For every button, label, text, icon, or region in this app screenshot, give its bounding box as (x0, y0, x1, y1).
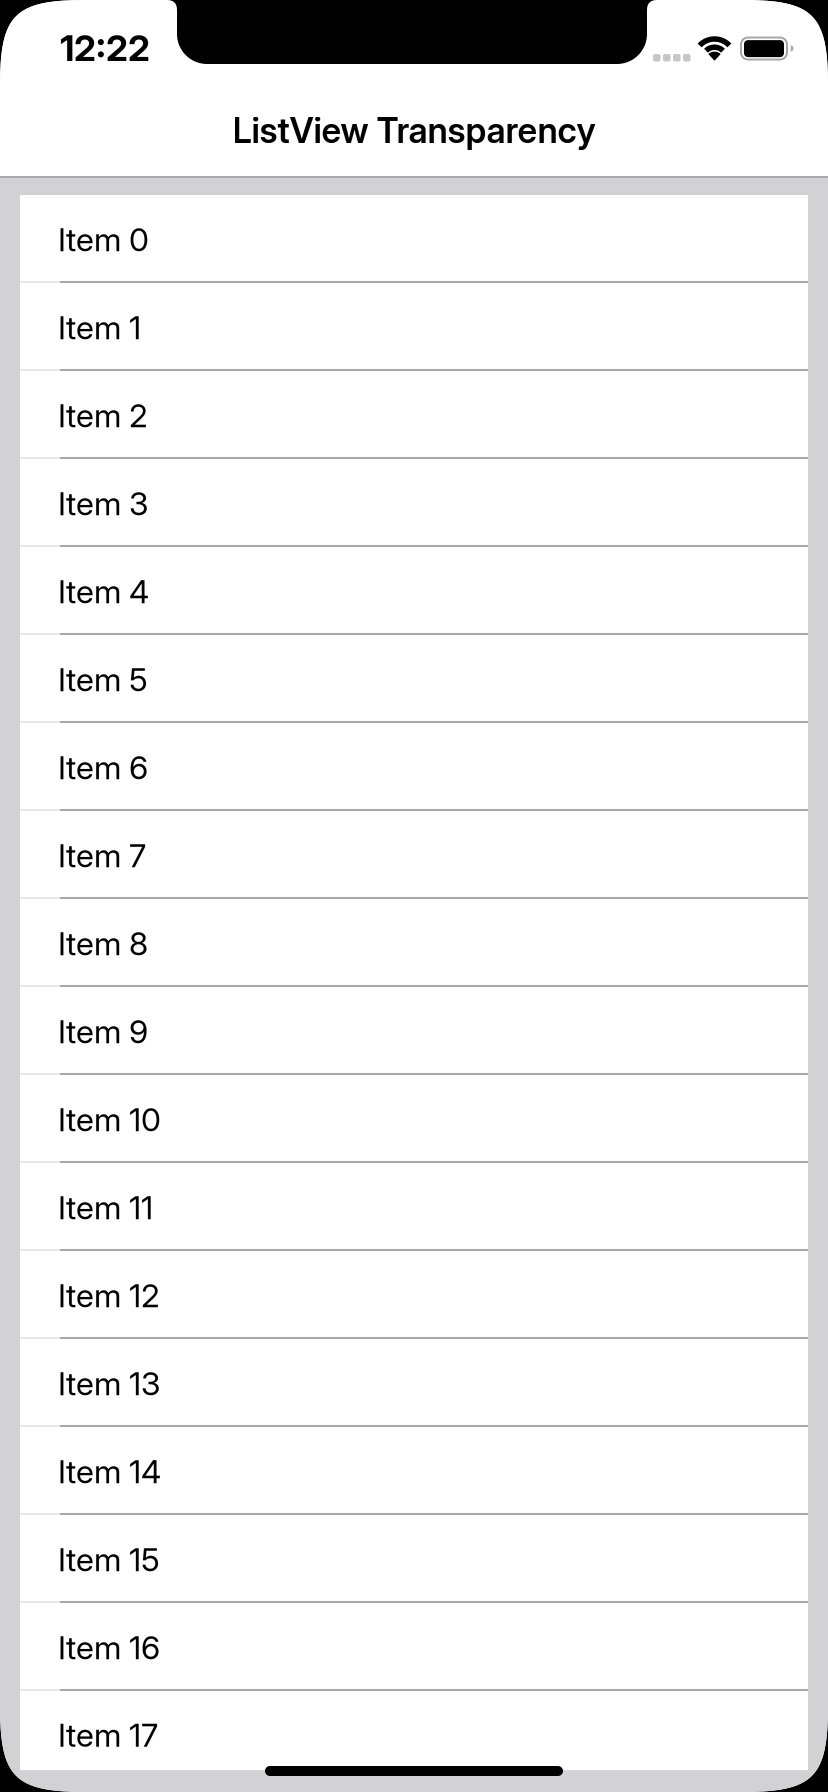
staticText: ListView Transparency (232, 110, 595, 151)
staticText: Item 4 (58, 573, 149, 610)
staticText: Item 2 (58, 397, 148, 434)
staticText: Item 8 (58, 925, 148, 962)
staticText: Item 16 (58, 1629, 160, 1666)
staticText: Item 6 (58, 749, 148, 786)
staticText: Item 15 (58, 1541, 160, 1578)
staticText: Item 17 (58, 1716, 158, 1754)
staticText: Item 13 (58, 1365, 160, 1402)
staticText: Item 11 (58, 1189, 153, 1226)
staticText: Item 1 (58, 309, 141, 346)
staticText: Item 0 (58, 221, 149, 258)
staticText: Item 5 (58, 661, 148, 698)
staticText: Item 7 (58, 837, 146, 874)
staticText: Item 12 (58, 1277, 160, 1314)
staticText: Item 10 (58, 1101, 161, 1138)
staticText: 12:22 (60, 27, 150, 69)
staticText: Item 3 (58, 485, 148, 522)
staticText: Item 14 (58, 1453, 161, 1490)
staticText: Item 9 (58, 1013, 148, 1050)
